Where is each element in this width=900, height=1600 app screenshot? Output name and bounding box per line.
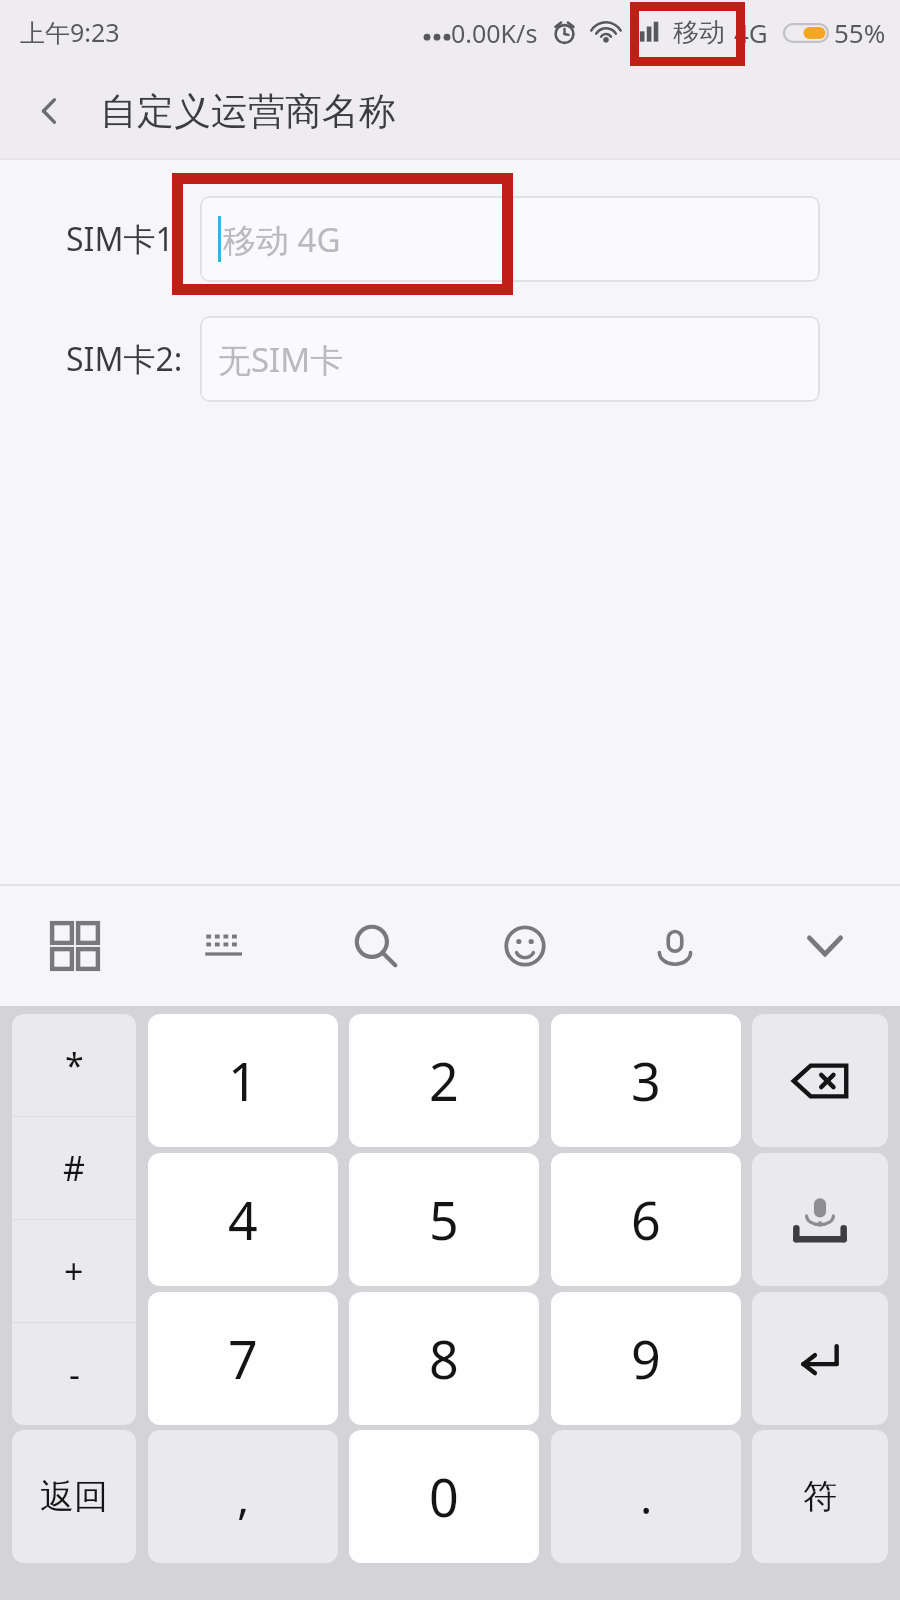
button[interactable]: 2	[349, 1014, 539, 1147]
staticText: 4	[228, 1184, 258, 1255]
staticText: *	[65, 1042, 84, 1088]
button[interactable]: *	[12, 1014, 136, 1116]
staticText: 上午9:23	[20, 15, 120, 49]
staticText: 符	[803, 1475, 837, 1518]
staticText: 3	[631, 1045, 661, 1116]
button[interactable]: Voice input	[626, 897, 724, 995]
staticText: 0.00K/s	[451, 16, 538, 50]
button[interactable]: 返回	[12, 1430, 136, 1563]
staticText: 移动 4G	[223, 217, 341, 262]
staticText: 返回	[40, 1475, 108, 1518]
staticText: ,	[237, 1465, 250, 1528]
staticText: +	[64, 1248, 84, 1294]
staticText: .	[640, 1465, 653, 1528]
button[interactable]: 6	[551, 1153, 741, 1286]
button[interactable]: 4	[148, 1153, 338, 1286]
button[interactable]: 8	[349, 1292, 539, 1425]
staticText: 6	[631, 1184, 661, 1255]
button[interactable]: 7	[148, 1292, 338, 1425]
button[interactable]: Emoji	[476, 897, 574, 995]
staticText: SIM卡2:	[66, 337, 183, 381]
button[interactable]: Hide keyboard	[776, 897, 874, 995]
button[interactable]: Apps	[26, 897, 124, 995]
button[interactable]: Backspace	[752, 1014, 888, 1147]
staticText: 自定义运营商名称	[100, 88, 396, 135]
staticText: 4G	[734, 15, 768, 50]
button[interactable]: Enter	[752, 1292, 888, 1425]
button[interactable]: 9	[551, 1292, 741, 1425]
staticText: #	[63, 1145, 85, 1191]
staticText: 9	[631, 1323, 661, 1394]
button[interactable]: 返回	[16, 77, 84, 145]
button[interactable]: 移动 4G	[200, 196, 820, 282]
staticText: 1	[228, 1045, 258, 1116]
staticText: 55%	[834, 15, 886, 50]
button[interactable]: Space	[752, 1153, 888, 1286]
button[interactable]: 无SIM卡	[200, 316, 820, 402]
button[interactable]: 符	[752, 1430, 888, 1563]
staticText: 移动	[673, 16, 725, 49]
staticText: 7	[228, 1323, 258, 1394]
button[interactable]: 3	[551, 1014, 741, 1147]
button[interactable]: 1	[148, 1014, 338, 1147]
button[interactable]: 0	[349, 1430, 539, 1563]
button[interactable]: +	[12, 1220, 136, 1322]
staticText: 无SIM卡	[218, 337, 344, 382]
staticText: 0	[429, 1461, 459, 1532]
button[interactable]: Search	[326, 897, 424, 995]
button[interactable]: #	[12, 1117, 136, 1219]
button[interactable]: -	[12, 1323, 136, 1425]
button[interactable]: ,	[148, 1430, 338, 1563]
button[interactable]: Keyboard	[176, 897, 274, 995]
staticText: -	[69, 1351, 80, 1397]
button[interactable]: 5	[349, 1153, 539, 1286]
staticText: 8	[429, 1323, 459, 1394]
staticText: SIM卡1:	[66, 217, 183, 261]
staticText: 5	[429, 1184, 459, 1255]
button[interactable]: .	[551, 1430, 741, 1563]
staticText: 2	[429, 1045, 459, 1116]
